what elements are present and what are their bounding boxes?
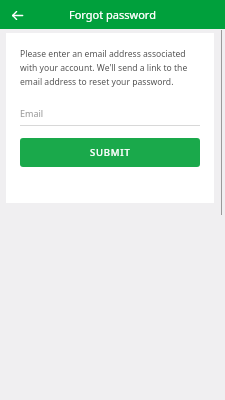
- button[interactable]: Email: [20, 107, 200, 126]
- button[interactable]: Back: [3, 1, 31, 29]
- button[interactable]: SUBMIT: [20, 138, 200, 167]
- staticText: Forgot password: [69, 7, 156, 22]
- staticText: Please enter an email address associated…: [20, 48, 200, 88]
- staticText: SUBMIT: [90, 146, 131, 159]
- staticText: Email: [20, 107, 44, 119]
